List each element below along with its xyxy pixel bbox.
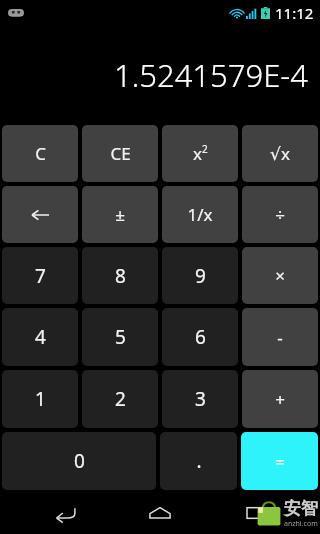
staticText: √x — [270, 142, 290, 165]
staticText: 9 — [195, 263, 206, 289]
staticText: anzhi.com — [284, 519, 318, 529]
staticText: 11:12 — [275, 3, 314, 23]
button[interactable]: decimal point — [160, 432, 237, 490]
button[interactable]: 1 — [2, 370, 78, 428]
staticText: 1 — [35, 386, 46, 412]
staticText: 1/x — [187, 203, 213, 226]
staticText: 安智 — [284, 498, 318, 519]
staticText: 5 — [115, 324, 126, 350]
staticText: + — [275, 388, 285, 411]
button[interactable]: 6 — [162, 308, 238, 366]
button[interactable]: 4 — [2, 308, 78, 366]
staticText: 8 — [115, 263, 126, 289]
button[interactable]: Back — [35, 492, 95, 534]
staticText: CE — [110, 142, 131, 165]
staticText: C — [35, 142, 46, 165]
button[interactable]: divide — [242, 186, 318, 243]
staticText: . — [196, 448, 202, 474]
staticText: 0 — [74, 448, 85, 474]
button[interactable]: C — [2, 125, 78, 182]
staticText: 1.5241579E-4 — [114, 54, 308, 96]
button[interactable]: Backspace — [2, 186, 78, 243]
button[interactable]: square root — [242, 125, 318, 182]
staticText: 7 — [35, 263, 46, 289]
staticText: x — [193, 142, 202, 165]
button[interactable]: 2 — [82, 370, 158, 428]
button[interactable]: plus — [242, 370, 318, 428]
button[interactable]: reciprocal — [162, 186, 238, 243]
button[interactable]: minus — [242, 308, 318, 366]
staticText: × — [275, 264, 285, 287]
button[interactable]: 8 — [82, 247, 158, 304]
button[interactable]: 3 — [162, 370, 238, 428]
button[interactable]: 5 — [82, 308, 158, 366]
button[interactable]: x squared — [162, 125, 238, 182]
staticText: 3 — [195, 386, 206, 412]
button[interactable]: 9 — [162, 247, 238, 304]
staticText: 6 — [195, 324, 206, 350]
button[interactable]: Home — [130, 492, 190, 534]
button[interactable]: 0 — [2, 432, 156, 490]
staticText: = — [275, 450, 285, 473]
staticText: 2 — [202, 142, 208, 156]
button[interactable]: 7 — [2, 247, 78, 304]
button[interactable]: plus minus — [82, 186, 158, 243]
staticText: ÷ — [275, 203, 285, 226]
staticText: ± — [115, 203, 125, 226]
button[interactable]: Recent apps — [225, 492, 285, 534]
button[interactable]: CE — [82, 125, 158, 182]
staticText: 2 — [115, 386, 126, 412]
button[interactable]: equals — [241, 432, 318, 490]
button[interactable]: multiply — [242, 247, 318, 304]
staticText: 4 — [35, 324, 46, 350]
staticText: - — [277, 326, 283, 349]
